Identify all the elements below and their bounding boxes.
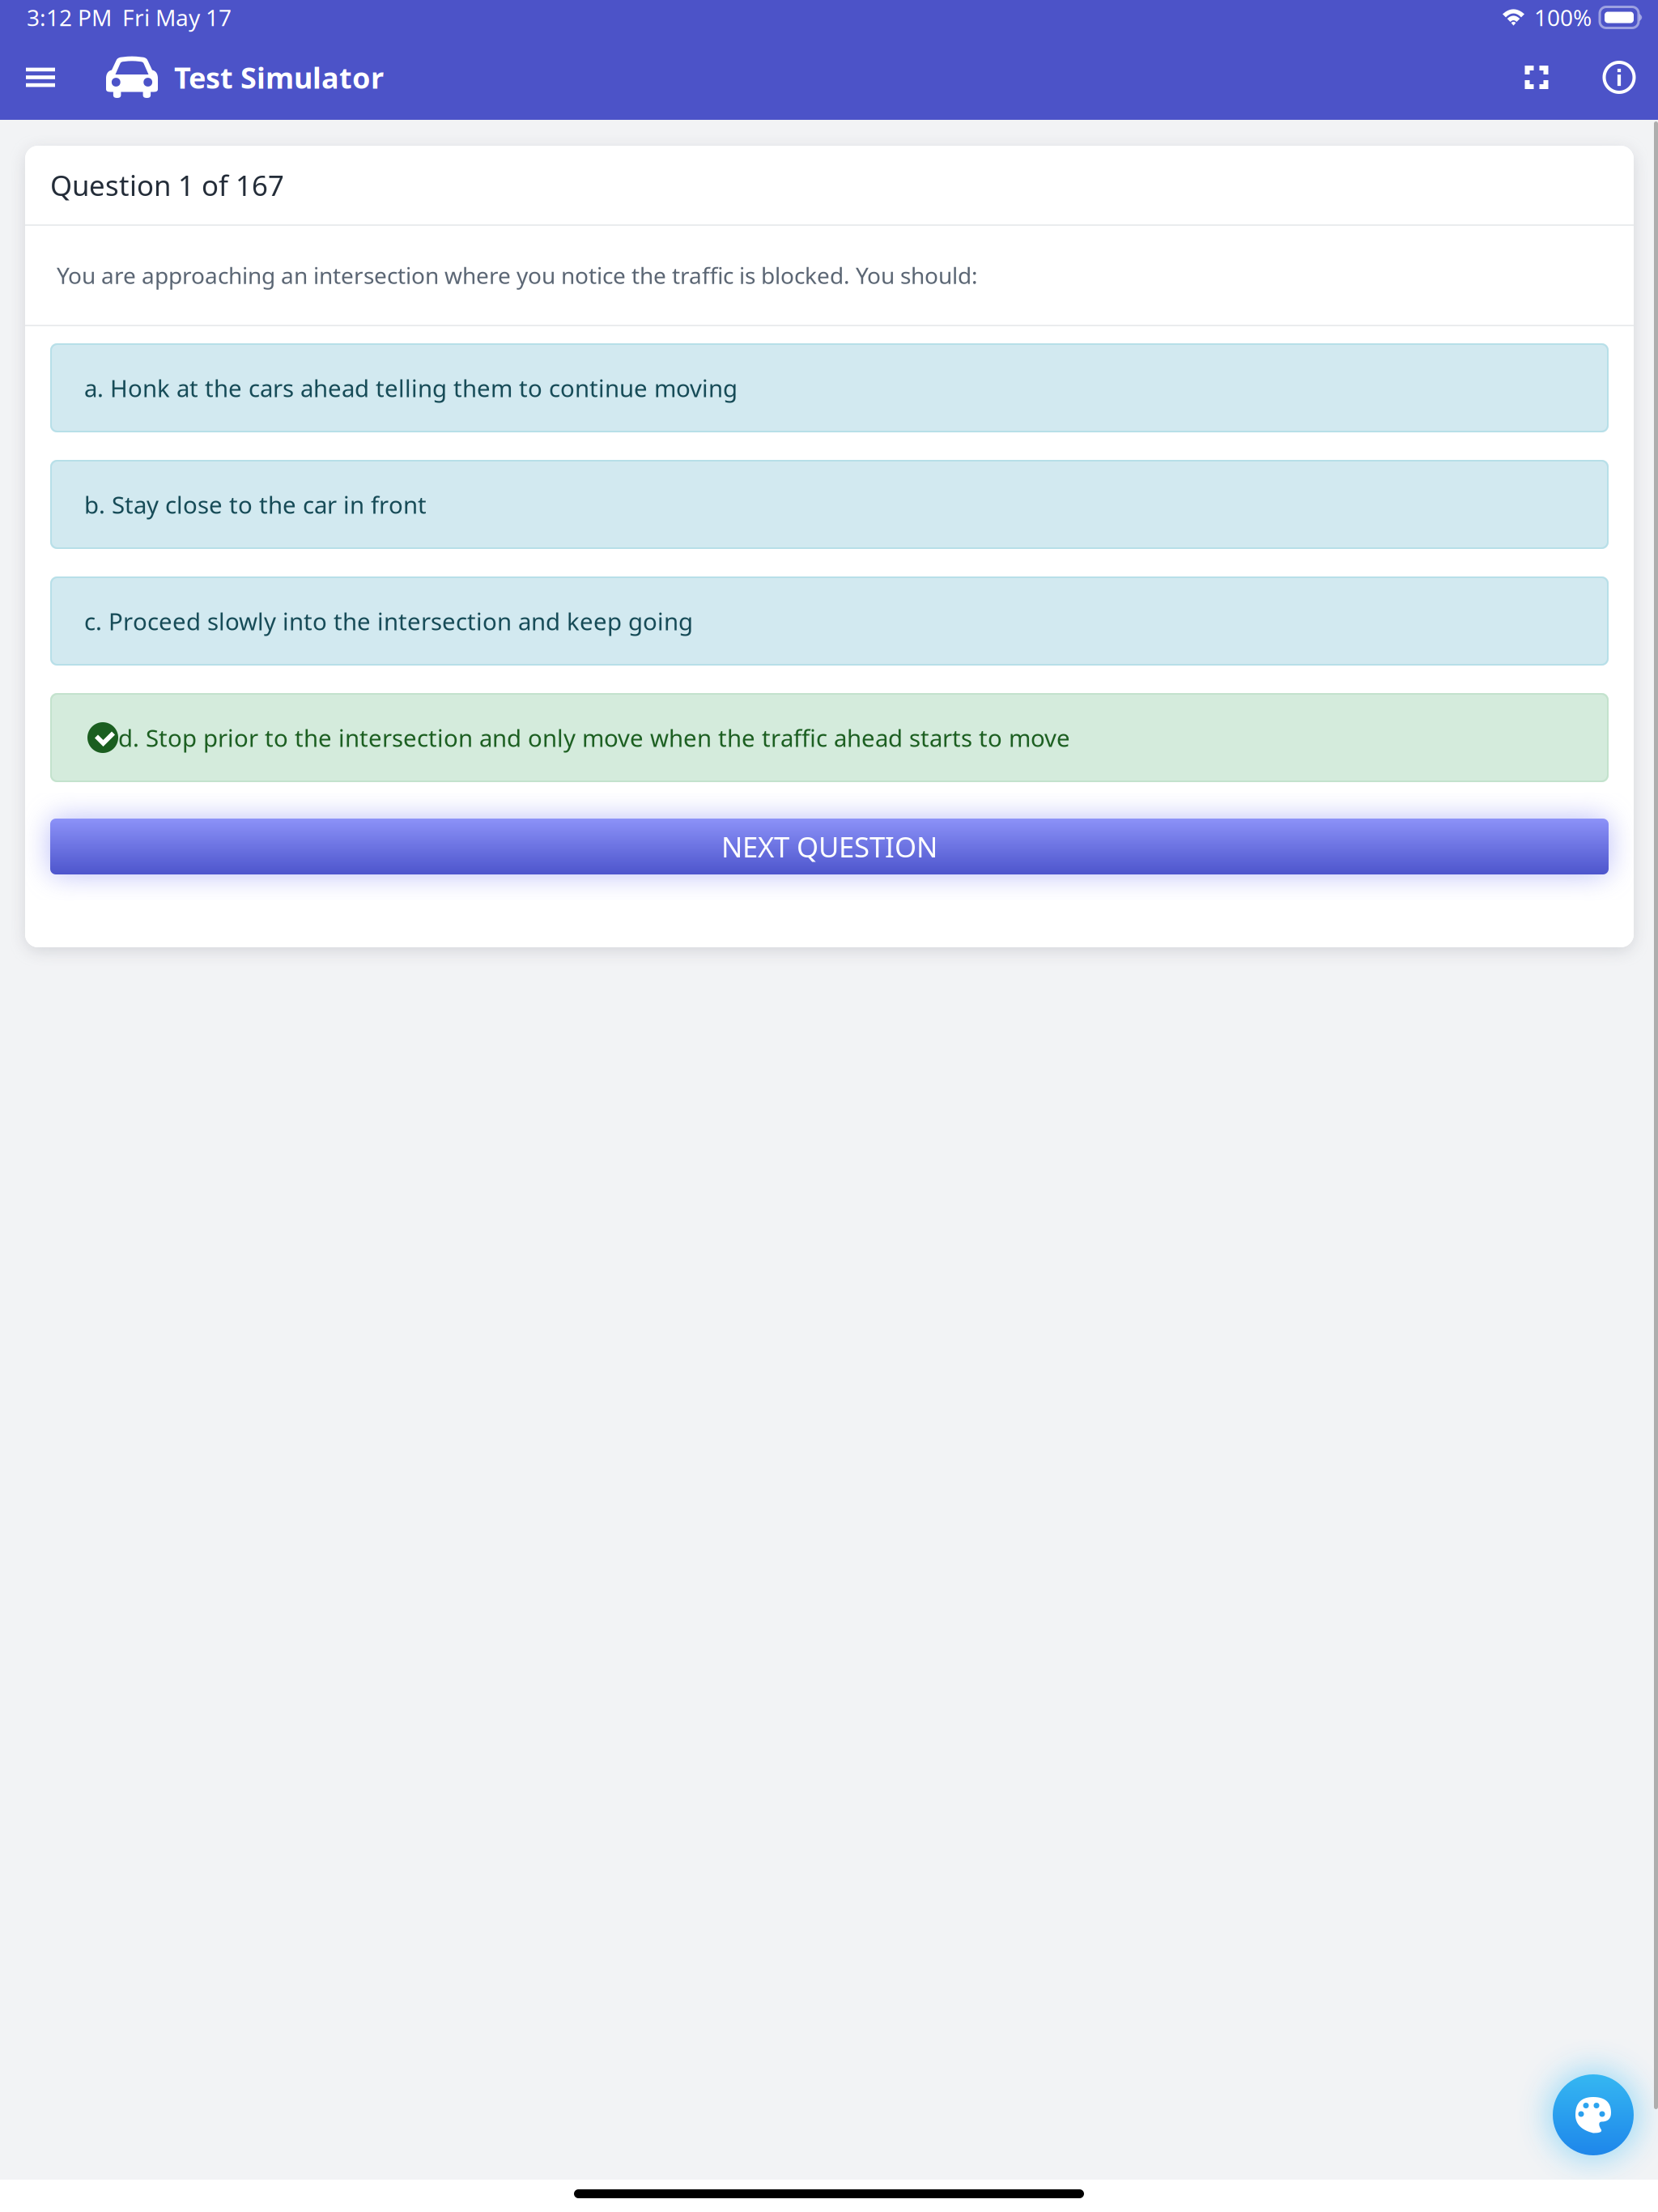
button[interactable]: Menu [12,49,69,106]
button[interactable]: Theme [1553,2074,1634,2155]
staticText: You are approaching an intersection wher… [57,260,978,290]
staticText: Fri May 17 [122,2,232,32]
staticText: b. Stay close to the car in front [84,489,427,520]
staticText: Question 1 of 167 [50,166,284,204]
staticText: 100% [1534,2,1592,32]
button[interactable]: Full screen [1508,49,1565,106]
button[interactable]: d. Stop prior to the intersection and on… [50,693,1609,782]
staticText: NEXT QUESTION [721,828,937,865]
staticText: c. Proceed slowly into the intersection … [84,605,693,637]
button[interactable]: c. Proceed slowly into the intersection … [50,576,1609,666]
staticText: a. Honk at the cars ahead telling them t… [84,372,738,404]
button[interactable]: NEXT QUESTION [50,819,1609,874]
button[interactable]: b. Stay close to the car in front [50,460,1609,549]
staticText: d. Stop prior to the intersection and on… [118,722,1070,753]
staticText: Test Simulator [174,58,384,97]
button[interactable]: a. Honk at the cars ahead telling them t… [50,343,1609,432]
button[interactable]: Information [1591,49,1647,106]
staticText: 3:12 PM [27,2,112,32]
